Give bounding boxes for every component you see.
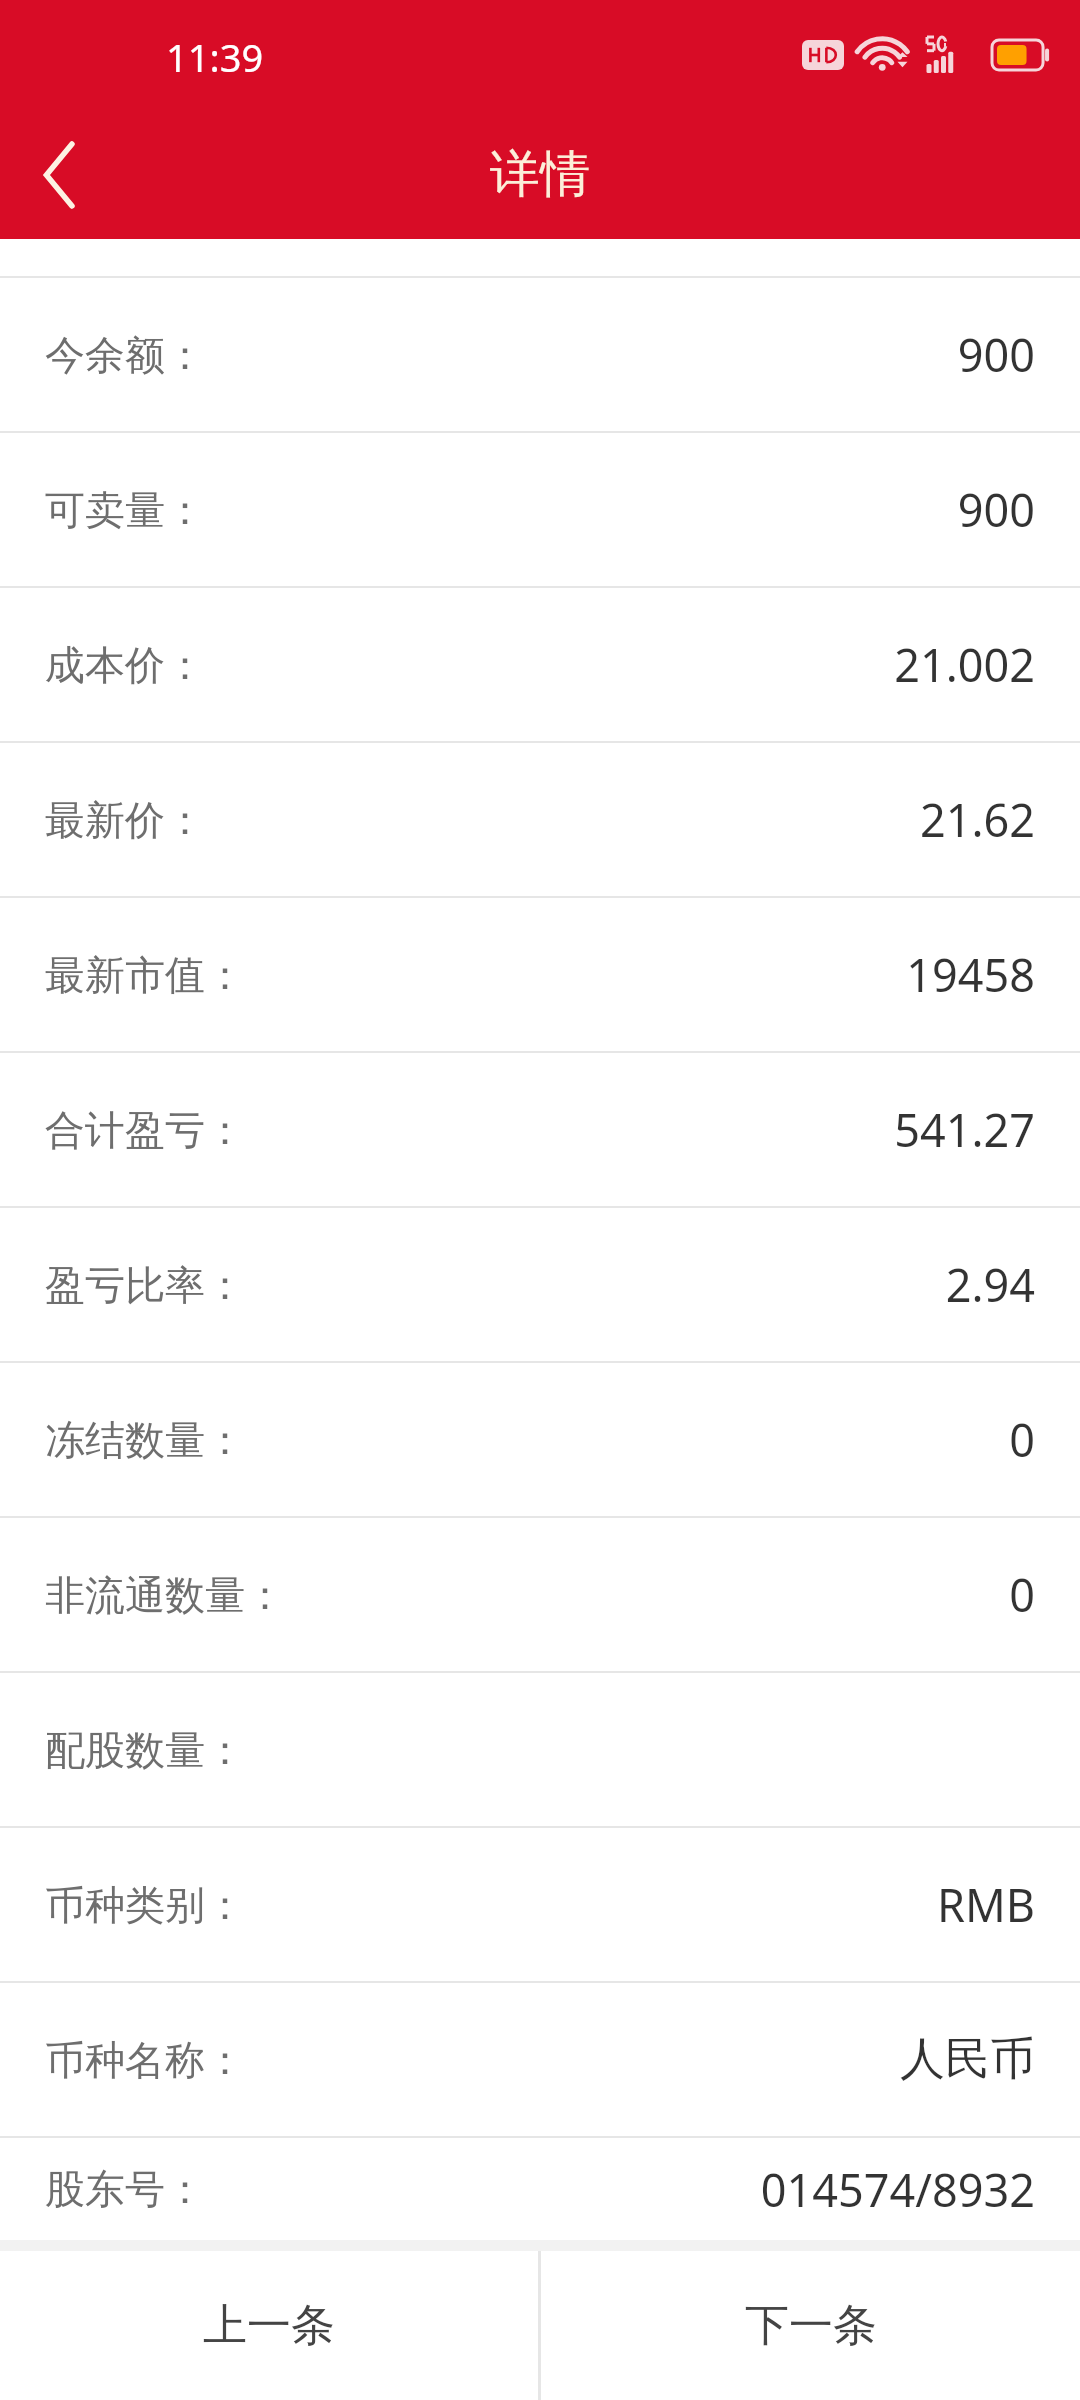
button[interactable]: 币种名称： — [0, 1983, 1080, 2136]
staticText: 19458 — [906, 944, 1035, 1005]
staticText: 014574/8932 — [760, 2159, 1035, 2220]
staticText: RMB — [936, 1874, 1035, 1935]
button[interactable]: 非流通数量： — [0, 1518, 1080, 1671]
staticText: 2.94 — [945, 1254, 1035, 1315]
button[interactable]: Back — [0, 110, 120, 239]
button[interactable]: 合计盈亏： — [0, 1053, 1080, 1206]
staticText: 币种类别： — [45, 1880, 245, 1930]
button[interactable]: 盈亏比率： — [0, 1208, 1080, 1361]
staticText: 配股数量： — [45, 1725, 245, 1775]
staticText: 详情 — [490, 143, 590, 206]
staticText: 900 — [957, 324, 1035, 385]
staticText: 合计盈亏： — [45, 1105, 245, 1155]
staticText: 900 — [957, 479, 1035, 540]
staticText: 上一条 — [203, 2298, 335, 2353]
staticText: 0 — [1009, 1564, 1035, 1625]
staticText: 股东号： — [45, 2164, 205, 2214]
button[interactable]: 币种类别： — [0, 1828, 1080, 1981]
button[interactable]: 最新价： — [0, 743, 1080, 896]
staticText: 人民币 — [900, 2031, 1035, 2088]
button[interactable]: 股东号： — [0, 2138, 1080, 2240]
staticText: 成本价： — [45, 640, 205, 690]
staticText: 可卖量： — [45, 485, 205, 535]
staticText: 非流通数量： — [45, 1570, 285, 1620]
staticText: 今余额： — [45, 330, 205, 380]
button[interactable]: 上一条 — [0, 2251, 538, 2400]
button[interactable]: 下一条 — [541, 2251, 1080, 2400]
staticText: 0 — [1009, 1409, 1035, 1470]
button[interactable]: 最新市值： — [0, 898, 1080, 1051]
staticText: 541.27 — [894, 1099, 1035, 1160]
button[interactable]: 冻结数量： — [0, 1363, 1080, 1516]
staticText: 冻结数量： — [45, 1415, 245, 1465]
staticText: 最新市值： — [45, 950, 245, 1000]
button[interactable]: 可卖量： — [0, 433, 1080, 586]
staticText: 最新价： — [45, 795, 205, 845]
staticText: 盈亏比率： — [45, 1260, 245, 1310]
staticText: 11:39 — [166, 31, 264, 83]
button[interactable]: 成本价： — [0, 588, 1080, 741]
button[interactable]: 今余额： — [0, 278, 1080, 431]
staticText: 21.62 — [919, 789, 1035, 850]
staticText: 下一条 — [745, 2298, 877, 2353]
button[interactable]: 配股数量： — [0, 1673, 1080, 1826]
staticText: 币种名称： — [45, 2035, 245, 2085]
staticText: 21.002 — [894, 634, 1035, 695]
